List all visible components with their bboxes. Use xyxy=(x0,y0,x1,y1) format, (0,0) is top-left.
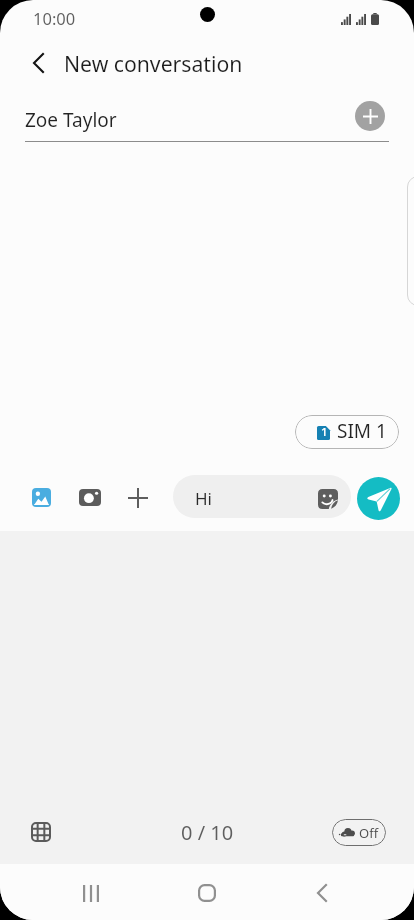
staticText: Hi xyxy=(195,487,212,510)
button[interactable]: Home xyxy=(179,865,235,920)
staticText: 10:00 xyxy=(33,7,76,29)
button[interactable]: 1 xyxy=(295,415,399,449)
button[interactable]: Recents xyxy=(63,865,119,920)
staticText: Off xyxy=(359,824,379,842)
staticText: 1 xyxy=(321,424,328,440)
staticText: Zoe Taylor xyxy=(25,107,117,133)
button[interactable]: Send xyxy=(357,477,400,520)
staticText: 0 / 10 xyxy=(181,819,234,846)
button[interactable]: Navigate up xyxy=(18,43,58,83)
button[interactable]: Keypad xyxy=(23,814,59,850)
button[interactable]: Gallery xyxy=(23,479,59,515)
button[interactable]: Camera xyxy=(72,479,108,515)
button[interactable]: Hi xyxy=(173,475,351,518)
button[interactable]: Off xyxy=(332,819,386,846)
staticText: New conversation xyxy=(64,49,243,78)
staticText: SIM 1 xyxy=(337,418,387,444)
button[interactable]: Back xyxy=(294,865,350,920)
button[interactable]: More options xyxy=(120,480,156,516)
button[interactable]: Add recipient xyxy=(355,101,385,131)
